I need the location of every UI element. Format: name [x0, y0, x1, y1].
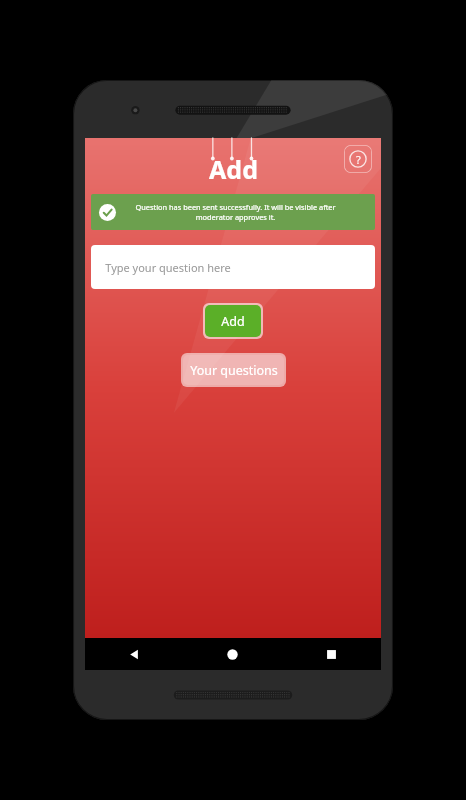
button[interactable]: Add	[205, 305, 261, 337]
staticText: Add	[221, 313, 245, 330]
button[interactable]: Question has been sent successfully. It …	[91, 194, 375, 230]
button[interactable]: Back	[85, 638, 183, 670]
button[interactable]: Your questions	[183, 355, 284, 385]
staticText: Question has been sent successfully. It …	[116, 202, 355, 222]
staticText: Type your question here	[105, 260, 231, 275]
button[interactable]: Help	[344, 145, 372, 173]
button[interactable]: Home	[183, 638, 282, 670]
button[interactable]: Recent apps	[282, 638, 381, 670]
staticText: ?	[356, 152, 361, 167]
staticText: Your questions	[190, 362, 278, 379]
staticText: Add	[209, 152, 258, 186]
button[interactable]: Type your question here	[91, 245, 375, 289]
